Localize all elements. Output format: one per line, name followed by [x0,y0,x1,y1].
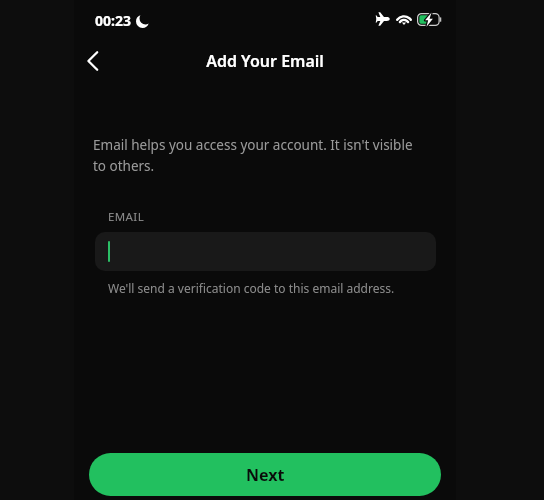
staticText: 00:23 [95,11,131,30]
staticText: EMAIL [108,209,145,225]
staticText: Next [246,464,285,486]
staticText: Add Your Email [206,50,324,72]
button[interactable]: Back [72,39,116,83]
staticText: We'll send a verification code to this e… [108,280,395,296]
button[interactable] [95,232,436,271]
staticText: Email helps you access your account. It … [93,136,425,175]
button[interactable]: Next [89,453,441,496]
